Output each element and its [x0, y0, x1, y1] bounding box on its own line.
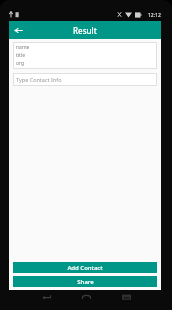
button[interactable]: Add Contact: [13, 262, 157, 273]
staticText: name: [16, 44, 30, 51]
staticText: Type Contact Info: [16, 76, 62, 83]
staticText: Result: [73, 25, 97, 36]
staticText: Add Contact: [67, 264, 103, 272]
button[interactable]: Recent apps: [115, 292, 137, 303]
button[interactable]: Home: [75, 292, 97, 303]
staticText: org: [16, 60, 25, 67]
button[interactable]: Back: [35, 292, 57, 303]
button[interactable]: Share: [13, 276, 157, 287]
button[interactable]: name: [13, 42, 157, 69]
button[interactable]: Back: [9, 21, 27, 39]
button[interactable]: Type Contact Info: [13, 73, 157, 86]
staticText: 12:12: [148, 12, 161, 19]
staticText: Share: [77, 278, 94, 286]
staticText: title: [16, 52, 26, 59]
